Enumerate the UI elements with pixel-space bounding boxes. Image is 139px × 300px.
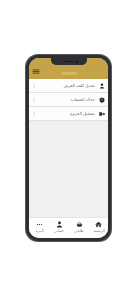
button[interactable]: حسابي [49, 219, 69, 234]
button[interactable]: Menu [32, 68, 40, 75]
staticText: تسجيل الخروج [69, 111, 95, 117]
button[interactable]: تعديل كلمة المرور [29, 79, 108, 92]
staticText: حسابي [54, 229, 64, 233]
staticText: المزيد [35, 229, 44, 233]
button[interactable]: المزيد [29, 219, 49, 234]
button[interactable]: حذف الحساب [29, 93, 108, 106]
staticText: تعديل كلمة المرور [63, 83, 95, 89]
staticText: الرئيسية [93, 229, 105, 233]
button[interactable]: طلباتي [69, 219, 89, 234]
staticText: حذف الحساب [70, 97, 95, 103]
button[interactable]: الرئيسية [89, 219, 108, 234]
staticText: طلباتي [74, 229, 84, 233]
button[interactable]: تسجيل الخروج [29, 107, 108, 120]
